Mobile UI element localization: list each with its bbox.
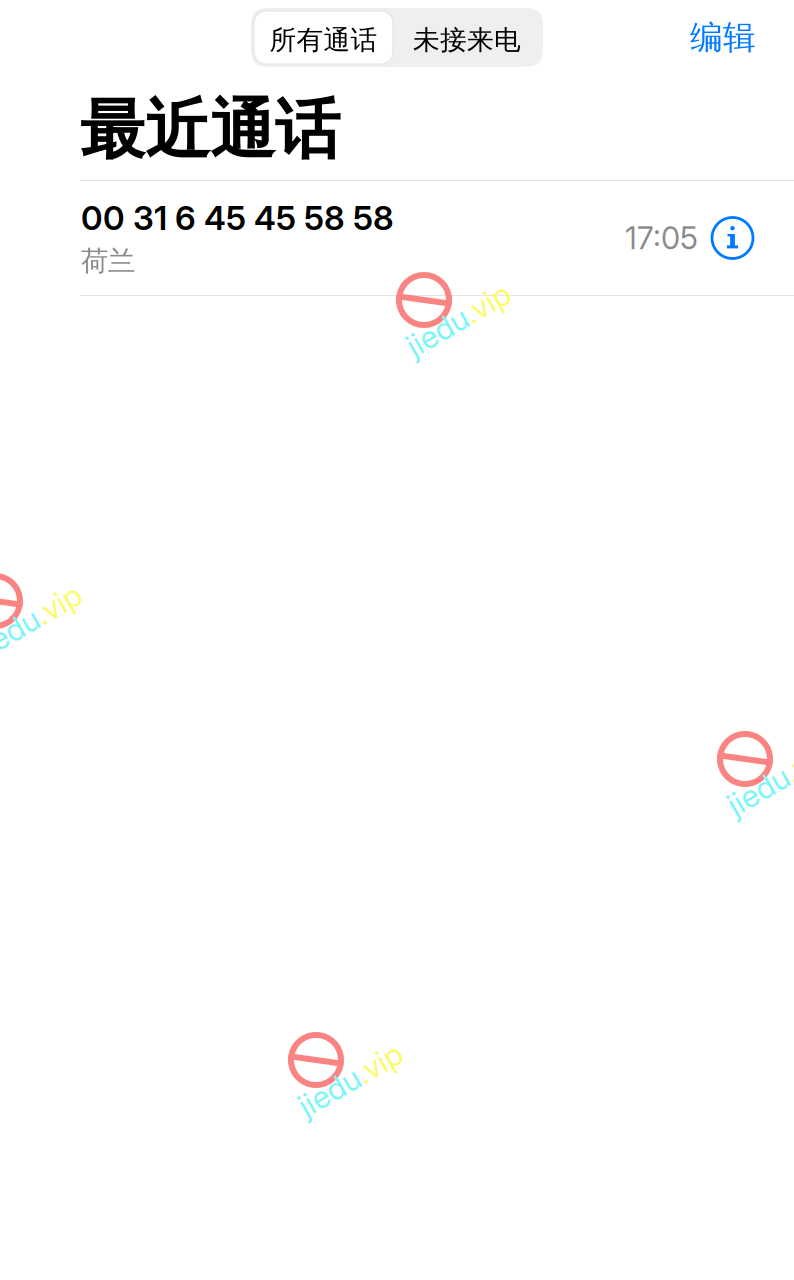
staticText: 编辑 <box>690 17 756 58</box>
staticText: jiedu <box>401 301 467 338</box>
staticText: .vip <box>788 760 794 797</box>
button[interactable]: 未接来电 <box>393 10 540 64</box>
staticText: .vip <box>467 301 516 338</box>
button[interactable]: 所有通话 <box>253 10 393 64</box>
staticText: 最近通话 <box>80 89 340 171</box>
staticText: jiedu <box>293 1061 359 1098</box>
staticText: jiedu <box>0 602 38 639</box>
staticText: .vip <box>38 602 87 639</box>
staticText: 00 31 6 45 45 58 58 <box>81 198 394 238</box>
staticText: 未接来电 <box>413 23 521 57</box>
staticText: jiedu <box>722 760 788 797</box>
staticText: 荷兰 <box>81 244 135 278</box>
button[interactable]: More Info <box>698 181 794 295</box>
staticText: 所有通话 <box>269 23 377 57</box>
staticText: 17:05 <box>625 219 698 256</box>
staticText: .vip <box>359 1061 408 1098</box>
button[interactable]: 00 31 6 45 45 58 58 <box>0 181 698 295</box>
button[interactable]: 编辑 <box>690 17 756 58</box>
